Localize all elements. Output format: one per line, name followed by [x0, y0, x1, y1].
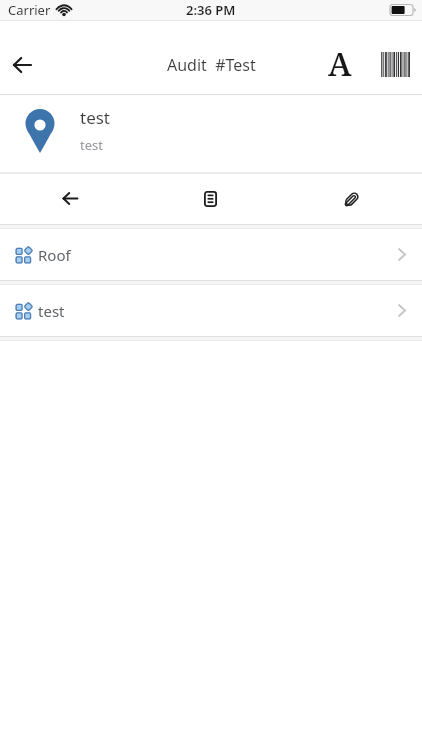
staticText: Roof	[38, 245, 71, 265]
staticText: test	[80, 136, 103, 154]
staticText: 2:36 PM	[186, 1, 236, 19]
staticText: Audit #Test	[167, 54, 256, 76]
staticText: Carrier	[8, 1, 51, 19]
staticText: test	[38, 301, 65, 321]
staticText: A	[328, 42, 352, 86]
staticText: test	[80, 106, 111, 129]
